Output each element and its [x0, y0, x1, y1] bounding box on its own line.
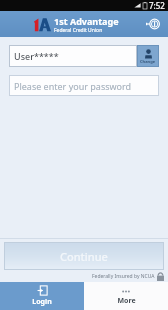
button[interactable]: Please enter your password — [9, 75, 159, 96]
staticText: Continue — [60, 249, 108, 264]
staticText: Please enter your password — [14, 80, 132, 92]
button[interactable]: Change user — [137, 45, 159, 67]
staticText: 1st Advantage — [54, 15, 119, 27]
staticText: Federally Insured by NCUA — [92, 273, 155, 280]
button[interactable]: More — [84, 282, 168, 310]
button[interactable]: User***** — [9, 45, 137, 67]
staticText: Change — [140, 59, 156, 64]
staticText: User***** — [14, 50, 59, 62]
staticText: Federal Credit Union — [54, 27, 103, 34]
button[interactable]: Login — [0, 282, 84, 310]
button[interactable]: Rates — [143, 14, 163, 34]
staticText: Login — [32, 297, 52, 307]
staticText: More — [117, 296, 136, 306]
button[interactable]: Continue — [4, 242, 164, 270]
staticText: 7:52 — [149, 0, 165, 11]
